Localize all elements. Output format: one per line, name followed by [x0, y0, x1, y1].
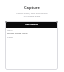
button[interactable]: New capture — [5, 21, 58, 28]
staticText: TODAY — [7, 29, 13, 31]
staticText: Collect notes, links and photos in a sin… — [0, 12, 64, 18]
staticText: 4 items — [7, 36, 14, 38]
staticText: Design review notes — [7, 32, 28, 35]
staticText: Capture — [24, 5, 40, 10]
staticText: New capture — [25, 23, 38, 26]
